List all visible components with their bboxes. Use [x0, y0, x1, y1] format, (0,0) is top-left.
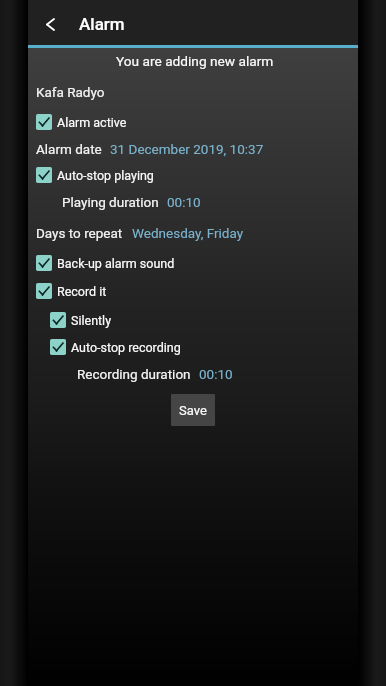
staticText: Record it: [57, 284, 107, 299]
button[interactable]: Auto-stop recording: [44, 333, 187, 361]
button[interactable]: Recording duration: [71, 360, 239, 388]
staticText: Wednesday, Friday: [132, 225, 244, 241]
button[interactable]: Alarm active: [30, 108, 133, 136]
staticText: Save: [179, 403, 207, 418]
button[interactable]: Alarm date: [30, 135, 270, 163]
button[interactable]: Silently: [44, 306, 118, 334]
staticText: Silently: [71, 313, 112, 328]
button[interactable]: Auto-stop playing: [30, 161, 160, 189]
staticText: Alarm: [79, 14, 125, 34]
staticText: Back-up alarm sound: [57, 256, 175, 271]
button[interactable]: Days to repeat: [30, 219, 250, 247]
button[interactable]: Playing duration: [56, 188, 207, 216]
button[interactable]: Kafa Radyo: [30, 78, 111, 106]
button[interactable]: Back-up alarm sound: [30, 249, 181, 277]
staticText: Days to repeat: [36, 225, 123, 241]
button[interactable]: Back: [28, 0, 68, 45]
staticText: 31 December 2019, 10:37: [110, 141, 264, 157]
staticText: Playing duration: [62, 194, 159, 210]
staticText: Alarm date: [36, 141, 102, 157]
staticText: You are adding new alarm: [116, 53, 274, 69]
staticText: Recording duration: [77, 366, 191, 382]
staticText: 00:10: [199, 366, 233, 382]
staticText: Auto-stop playing: [57, 168, 154, 183]
staticText: 00:10: [167, 194, 201, 210]
button[interactable]: Save: [171, 394, 215, 426]
staticText: Auto-stop recording: [71, 340, 181, 355]
staticText: Kafa Radyo: [36, 84, 105, 100]
button[interactable]: Record it: [30, 277, 113, 305]
staticText: Alarm active: [57, 115, 127, 130]
